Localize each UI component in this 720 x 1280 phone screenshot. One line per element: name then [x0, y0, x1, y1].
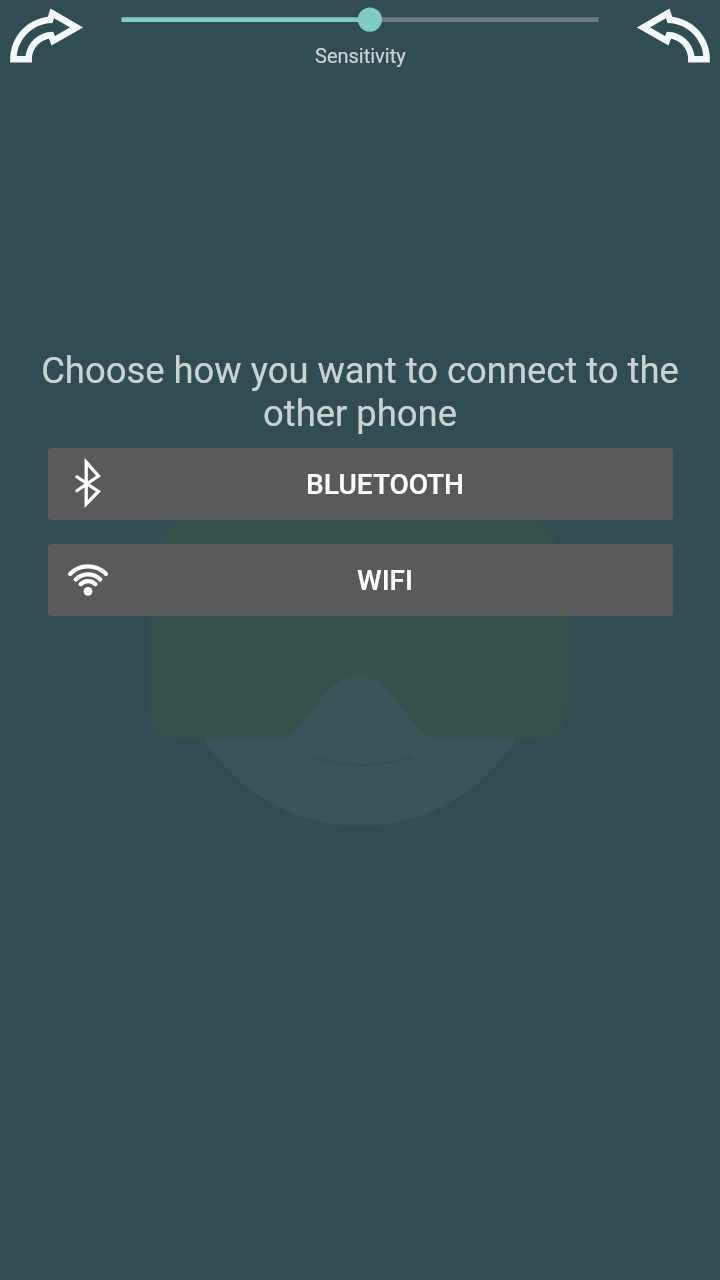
button[interactable]: Redo: [0, 0, 95, 75]
button[interactable]: Undo: [625, 0, 720, 75]
button[interactable]: BLUETOOTH: [48, 448, 673, 520]
staticText: WIFI: [357, 564, 413, 597]
staticText: BLUETOOTH: [306, 468, 464, 501]
button[interactable]: Sensitivity slider: [121, 0, 599, 40]
staticText: Choose how you want to connect to the ot…: [35, 349, 685, 435]
staticText: Sensitivity: [315, 44, 406, 67]
button[interactable]: WIFI: [48, 544, 673, 616]
